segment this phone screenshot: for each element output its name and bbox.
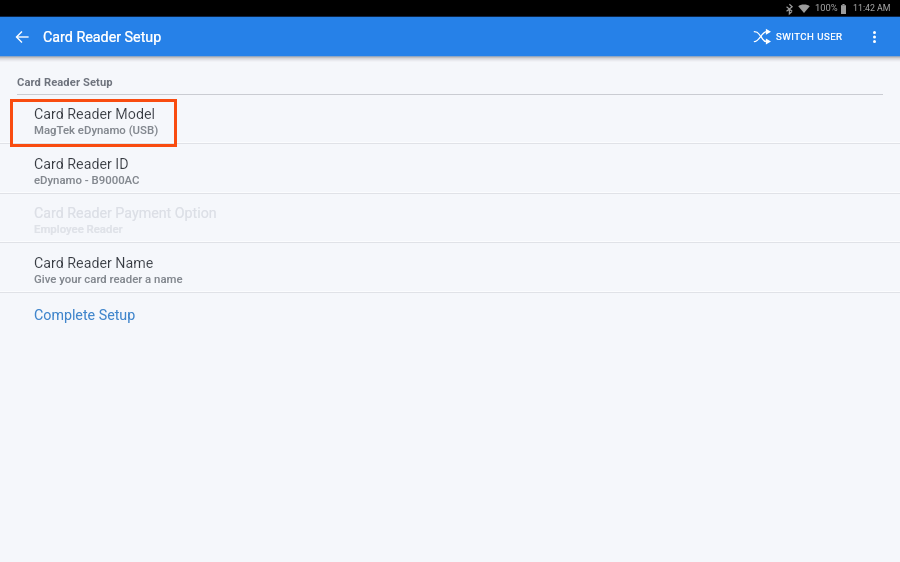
staticText: eDynamo - B9000AC — [34, 173, 140, 186]
button[interactable]: Card Reader Name — [0, 244, 900, 293]
button[interactable]: More options — [861, 24, 887, 50]
button[interactable]: Card Reader Payment Option — [0, 194, 900, 243]
staticText: Give your card reader a name — [34, 272, 183, 285]
staticText: Card Reader ID — [34, 156, 129, 173]
button[interactable]: Card Reader ID — [0, 145, 900, 194]
staticText: Card Reader Name — [34, 255, 154, 272]
staticText: MagTek eDynamo (USB) — [34, 123, 159, 136]
button[interactable]: SWITCH USER — [748, 22, 849, 51]
staticText: Card Reader Setup — [43, 29, 162, 46]
staticText: SWITCH USER — [776, 31, 843, 42]
staticText: 100% — [815, 2, 838, 13]
staticText: Complete Setup — [34, 307, 136, 324]
button[interactable]: Card Reader Model — [0, 95, 900, 144]
staticText: Card Reader Payment Option — [34, 205, 217, 222]
button[interactable]: Complete Setup — [0, 293, 900, 342]
button[interactable]: Navigate up — [10, 25, 34, 49]
staticText: Employee Reader — [34, 222, 123, 235]
staticText: 11:42 AM — [853, 3, 891, 13]
staticText: Card Reader Model — [34, 106, 155, 123]
staticText: Card Reader Setup — [17, 76, 113, 89]
